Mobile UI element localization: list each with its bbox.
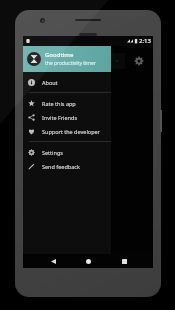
staticText: Send feedback bbox=[42, 163, 80, 170]
button[interactable]: Settings bbox=[133, 55, 145, 67]
staticText: 2:13 bbox=[139, 37, 151, 45]
button[interactable]: Support the developer bbox=[23, 124, 111, 138]
button[interactable]: Settings bbox=[23, 145, 111, 159]
button[interactable]: Goodtime bbox=[23, 46, 111, 72]
staticText: the productivity timer bbox=[45, 60, 96, 67]
button[interactable]: Rate this app bbox=[23, 96, 111, 110]
staticText: About bbox=[42, 79, 58, 86]
staticText: Invite Friends bbox=[42, 114, 78, 121]
button[interactable] bbox=[109, 53, 125, 69]
button[interactable]: Send feedback bbox=[23, 159, 111, 173]
staticText: Support the developer bbox=[42, 128, 100, 135]
button[interactable]: Back bbox=[47, 255, 59, 267]
button[interactable]: About bbox=[23, 75, 111, 89]
button[interactable]: Invite Friends bbox=[23, 110, 111, 124]
staticText: Settings bbox=[42, 149, 63, 156]
staticText: Rate this app bbox=[42, 100, 76, 107]
staticText: Goodtime bbox=[45, 51, 74, 59]
button[interactable]: Recents bbox=[118, 255, 130, 267]
button[interactable]: Home bbox=[82, 255, 94, 267]
